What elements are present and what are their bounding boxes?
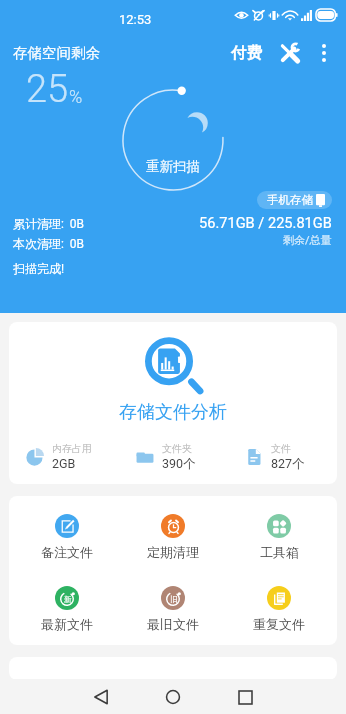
button[interactable]: Home	[158, 682, 188, 712]
staticText: 重复文件	[253, 616, 305, 632]
staticText: 重新扫描	[146, 158, 200, 175]
button[interactable]: 手机存储	[257, 191, 332, 209]
button[interactable]: 内存占用	[26, 442, 119, 471]
button[interactable]: 工具箱	[226, 514, 332, 560]
staticText: 最新文件	[41, 616, 93, 632]
staticText: 12:53	[119, 12, 152, 27]
button[interactable]: More options	[311, 40, 337, 66]
button[interactable]: 旧	[120, 586, 226, 632]
staticText: 累计清理: 0B	[13, 216, 85, 231]
button[interactable]: 文件夹	[136, 442, 228, 472]
staticText: 最旧文件	[147, 616, 199, 632]
staticText: 25	[26, 67, 69, 112]
staticText: 备注文件	[41, 544, 93, 560]
staticText: %	[69, 86, 83, 107]
staticText: 新	[64, 595, 72, 604]
button[interactable]: Tools	[277, 40, 303, 66]
staticText: 存储文件分析	[119, 401, 227, 424]
button[interactable]: 备注文件	[14, 514, 120, 560]
staticText: 56.71GB / 225.81GB	[199, 214, 332, 231]
button[interactable]: 付费	[228, 39, 265, 67]
staticText: 手机存储	[267, 193, 313, 207]
button[interactable]: 文件	[245, 442, 337, 472]
staticText: 2GB	[52, 456, 76, 471]
staticText: 旧	[170, 595, 178, 604]
staticText: 扫描完成!	[13, 261, 65, 276]
staticText: 工具箱	[260, 544, 299, 560]
staticText: 56	[321, 11, 331, 20]
staticText: 827个	[271, 456, 305, 472]
staticText: 本次清理: 0B	[13, 236, 85, 251]
staticText: 内存占用	[52, 442, 92, 455]
staticText: 文件	[271, 442, 291, 455]
button[interactable]: Recent apps	[230, 682, 260, 712]
button[interactable]: 重新扫描	[113, 83, 233, 203]
button[interactable]: Back	[86, 682, 116, 712]
staticText: 390个	[162, 456, 196, 472]
staticText: 文件夹	[162, 442, 192, 455]
button[interactable]: 定期清理	[120, 514, 226, 560]
staticText: 存储空间剩余	[13, 44, 100, 62]
button[interactable]: 新	[14, 586, 120, 632]
staticText: 付费	[231, 43, 262, 63]
button[interactable]: 重复文件	[226, 586, 332, 632]
button[interactable]: 存储文件分析	[9, 322, 337, 430]
staticText: 剩余/总量	[283, 233, 332, 247]
staticText: 定期清理	[147, 544, 199, 560]
